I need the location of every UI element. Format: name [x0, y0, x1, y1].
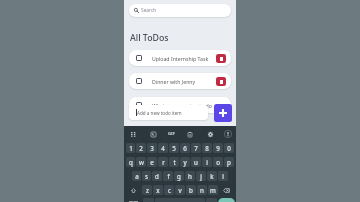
staticText: 5	[172, 144, 176, 152]
staticText: t	[173, 158, 176, 166]
button[interactable]: Enter	[218, 198, 235, 202]
staticText: z	[146, 186, 149, 194]
button[interactable]: t	[169, 157, 179, 167]
staticText: 7	[194, 144, 198, 152]
staticText: All ToDos	[130, 32, 169, 44]
button[interactable]: 6	[180, 143, 190, 153]
staticText: n	[200, 186, 204, 194]
button[interactable]: y	[180, 157, 190, 167]
button[interactable]: p	[224, 157, 234, 167]
button[interactable]: 1	[126, 143, 135, 153]
staticText: w	[139, 158, 144, 166]
button[interactable]: o	[213, 157, 223, 167]
staticText: Upload Internship Task	[152, 55, 209, 62]
button[interactable]: Toggle done	[136, 55, 142, 61]
staticText: v	[178, 186, 182, 194]
button[interactable]: f	[163, 171, 173, 181]
staticText: 1	[129, 144, 133, 152]
button[interactable]: GIF	[166, 129, 176, 139]
staticText: j	[200, 172, 202, 180]
button[interactable]: 5	[169, 143, 179, 153]
button[interactable]: Keyboard modes	[128, 129, 138, 139]
button[interactable]: Toggle done	[136, 102, 142, 108]
button[interactable]: z	[142, 185, 152, 195]
button[interactable]: e	[147, 157, 157, 167]
button[interactable]: Toggle done	[129, 73, 231, 89]
button[interactable]: 9	[213, 143, 223, 153]
staticText: p	[227, 158, 231, 166]
staticText: b	[189, 186, 193, 194]
button[interactable]: v	[175, 185, 185, 195]
staticText: o	[216, 158, 220, 166]
button[interactable]: c	[164, 185, 174, 195]
staticText: i	[206, 158, 208, 166]
button[interactable]: g	[174, 171, 184, 181]
staticText: r	[162, 158, 165, 166]
button[interactable]: m	[208, 185, 218, 195]
button[interactable]: Toggle done	[129, 97, 231, 113]
staticText: f	[167, 172, 170, 180]
button[interactable]: i	[202, 157, 212, 167]
staticText: h	[188, 172, 192, 180]
staticText: 8	[205, 144, 209, 152]
button[interactable]: 8	[202, 143, 212, 153]
button[interactable]: s	[142, 171, 151, 181]
button[interactable]: x	[153, 185, 163, 195]
button[interactable]: Clipboard	[185, 129, 195, 139]
button[interactable]: k	[207, 171, 217, 181]
staticText: Dinner with Jenny	[152, 78, 196, 85]
button[interactable]: Add a new todo item	[129, 105, 208, 120]
button[interactable]: r	[158, 157, 168, 167]
button[interactable]: b	[186, 185, 196, 195]
staticText: 9	[216, 144, 220, 152]
staticText: Add a new todo item	[137, 110, 182, 116]
staticText: 3	[150, 144, 154, 152]
button[interactable]: Toggle done	[136, 78, 142, 84]
button[interactable]: Add todo	[214, 104, 232, 122]
staticText: m	[210, 186, 216, 194]
button[interactable]: q	[126, 157, 135, 167]
button[interactable]: 7	[191, 143, 201, 153]
button[interactable]: d	[152, 171, 162, 181]
staticText: d	[155, 172, 159, 180]
staticText: q	[129, 158, 133, 166]
staticText: a	[135, 172, 139, 180]
staticText: 4	[161, 144, 165, 152]
button[interactable]: 3	[147, 143, 157, 153]
button[interactable]: Shift	[126, 185, 141, 195]
button[interactable]: u	[191, 157, 201, 167]
button[interactable]: Voice input	[223, 129, 233, 139]
staticText: What are we going to do here?	[152, 102, 226, 109]
staticText: 6	[183, 144, 187, 152]
button[interactable]: Delete	[216, 77, 226, 86]
staticText: x	[156, 186, 160, 194]
button[interactable]: Search	[129, 4, 231, 17]
staticText: ?123	[129, 200, 139, 202]
button[interactable]: j	[196, 171, 206, 181]
button[interactable]: 4	[158, 143, 168, 153]
staticText: y	[183, 158, 187, 166]
staticText: Search	[141, 7, 157, 14]
staticText: u	[194, 158, 198, 166]
button[interactable]: n	[197, 185, 207, 195]
button[interactable]: Settings	[205, 129, 215, 139]
button[interactable]: Backspace	[219, 185, 234, 195]
button[interactable]: 2	[136, 143, 146, 153]
button[interactable]: l	[218, 171, 228, 181]
button[interactable]: w	[136, 157, 146, 167]
button[interactable]: Stickers	[148, 129, 158, 139]
button[interactable]: a	[132, 171, 141, 181]
staticText: l	[222, 172, 224, 180]
staticText: c	[168, 186, 171, 194]
staticText: 2	[139, 144, 143, 152]
staticText: k	[210, 172, 214, 180]
button[interactable]: 0	[224, 143, 234, 153]
button[interactable]: Delete	[216, 54, 226, 63]
button[interactable]: Toggle done	[129, 50, 231, 66]
button[interactable]: ?123	[125, 198, 142, 202]
button[interactable]: h	[185, 171, 195, 181]
